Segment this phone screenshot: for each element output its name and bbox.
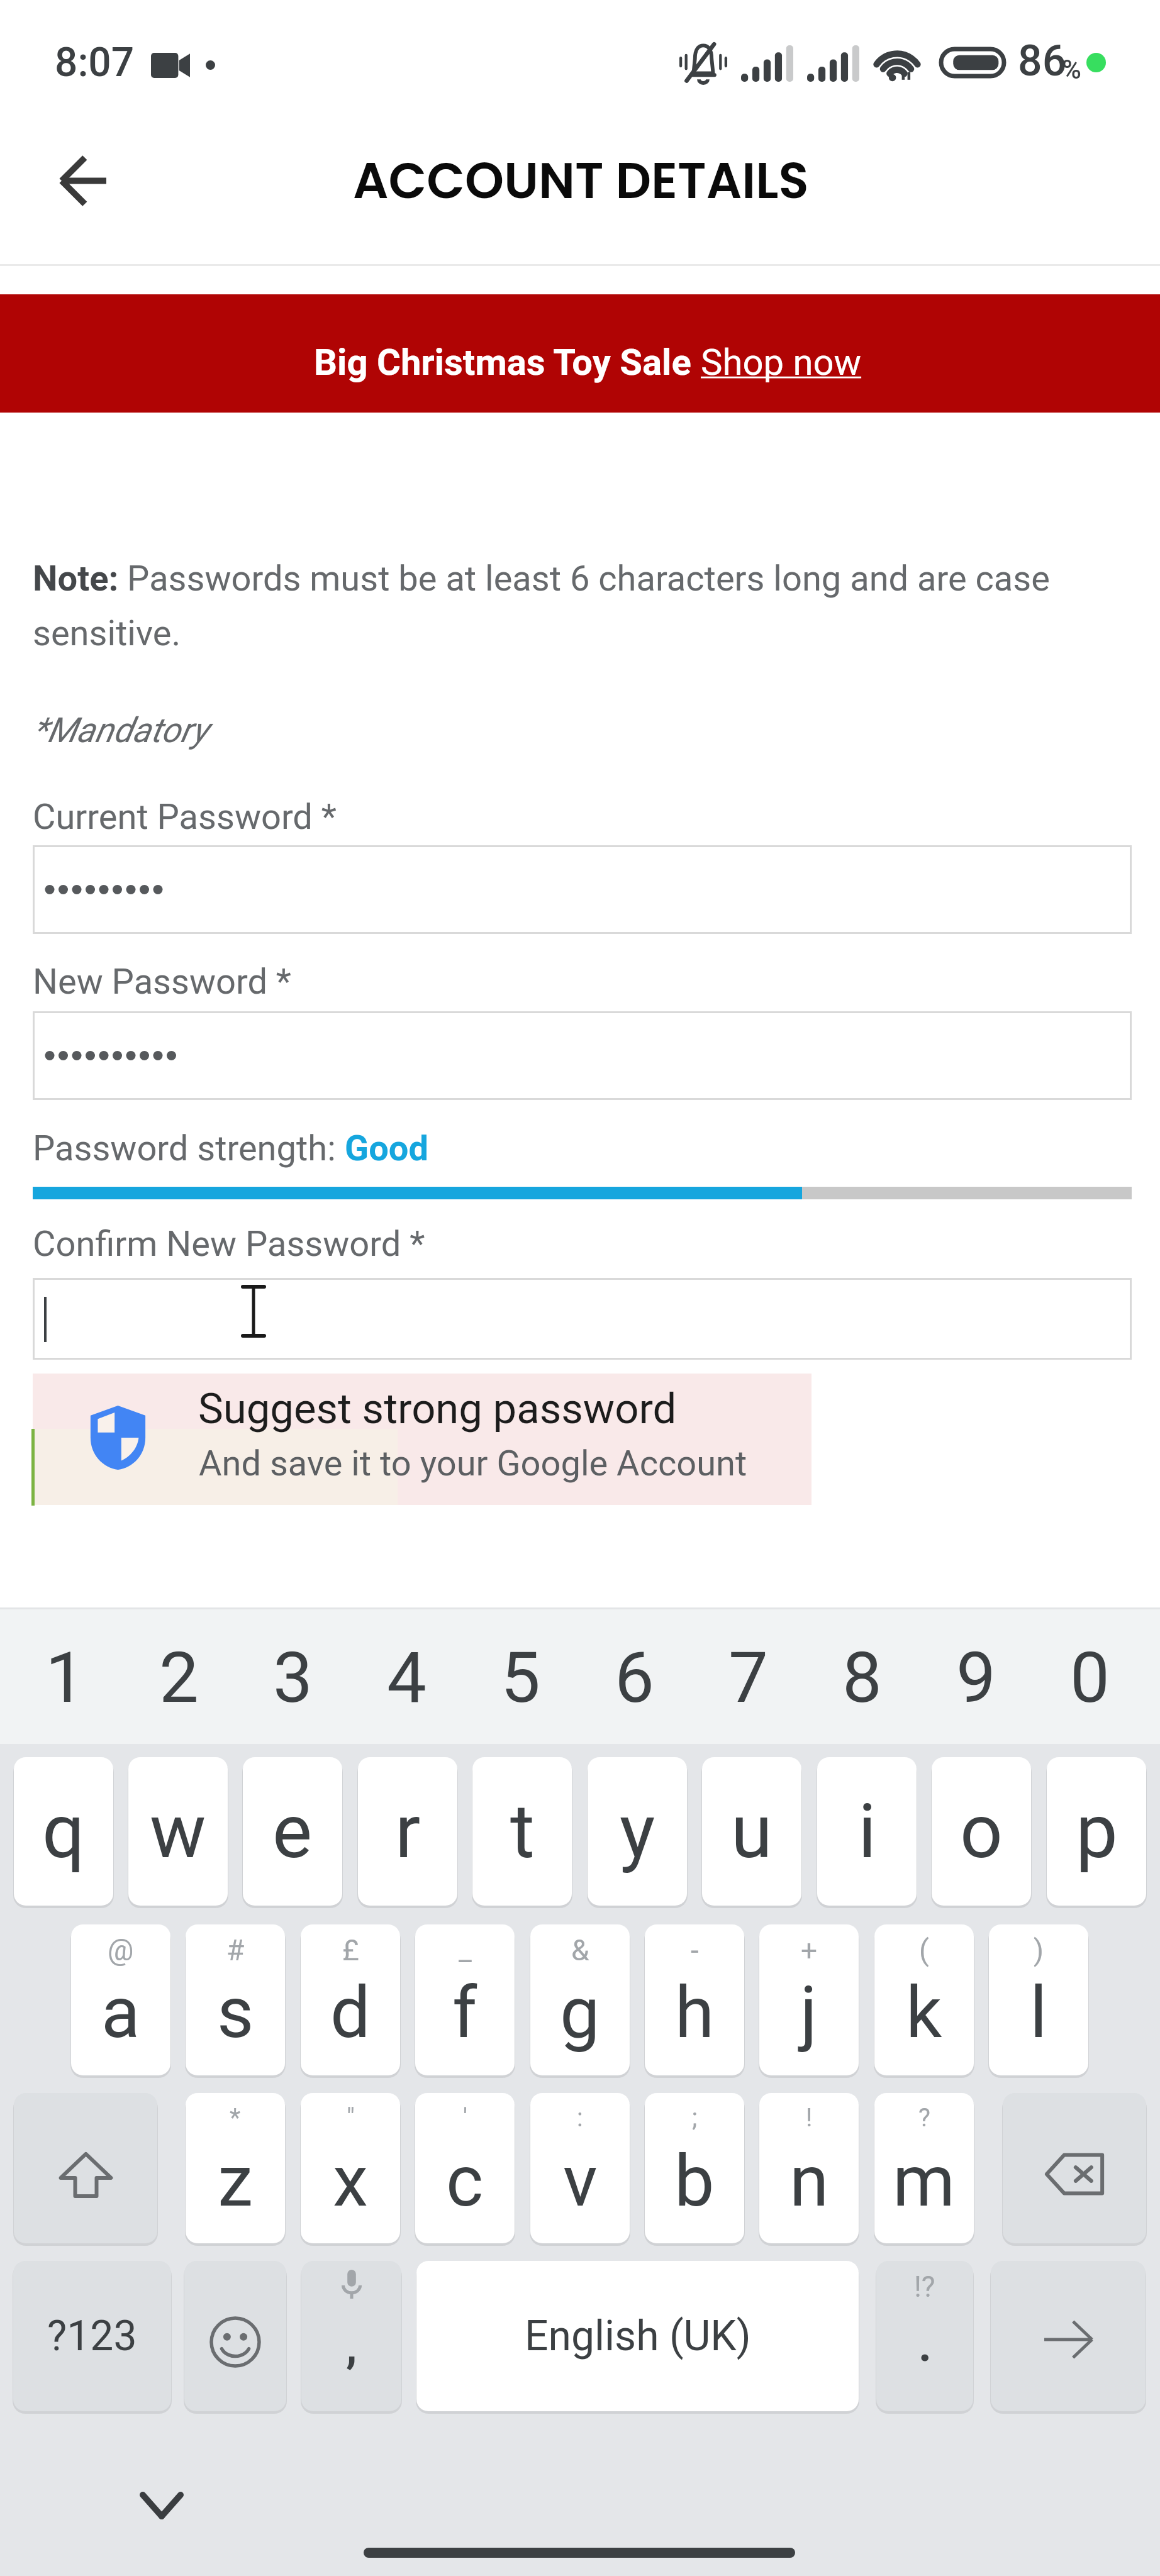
button[interactable]: 2 xyxy=(122,1611,235,1743)
staticText: And save it to your Google Account xyxy=(199,1443,747,1484)
button[interactable]: g xyxy=(530,1924,630,2075)
staticText: _ xyxy=(459,1933,472,1967)
staticText: *Mandatory xyxy=(33,710,208,750)
button[interactable]: d xyxy=(301,1924,400,2075)
staticText: o xyxy=(960,1788,1003,1875)
button[interactable]: x xyxy=(301,2093,400,2243)
staticText: Current Password * xyxy=(33,796,337,838)
button[interactable]: o xyxy=(932,1757,1031,1906)
button[interactable]: Shift xyxy=(14,2093,157,2243)
button[interactable]: m xyxy=(874,2093,974,2243)
button[interactable]: . xyxy=(876,2261,973,2411)
staticText: l xyxy=(1030,1971,1047,2054)
staticText: 86 xyxy=(1018,36,1067,86)
button[interactable]: c xyxy=(415,2093,515,2243)
button[interactable]: s xyxy=(186,1924,285,2075)
button[interactable]: 0 xyxy=(1033,1611,1146,1743)
button[interactable]: k xyxy=(874,1924,974,2075)
staticText: New Password * xyxy=(33,961,291,1002)
staticText: ( xyxy=(919,1933,929,1967)
staticText: v xyxy=(563,2140,598,2223)
button[interactable]: e xyxy=(243,1757,342,1906)
button[interactable]: u xyxy=(702,1757,801,1906)
staticText: ! xyxy=(806,2103,813,2133)
staticText: ?123 xyxy=(47,2312,137,2360)
button[interactable]: 8 xyxy=(805,1611,918,1743)
button[interactable]: y xyxy=(588,1757,687,1906)
button[interactable]: Back xyxy=(35,133,130,228)
staticText: " xyxy=(347,2103,355,2133)
staticText: Good xyxy=(345,1128,429,1169)
button[interactable]: Emoji xyxy=(184,2261,286,2411)
button[interactable]: r xyxy=(358,1757,457,1906)
staticText: ) xyxy=(1034,1933,1044,1967)
staticText: @ xyxy=(108,1933,134,1967)
staticText: 7 xyxy=(728,1636,768,1719)
staticText: 6 xyxy=(615,1636,654,1719)
button[interactable]: h xyxy=(645,1924,744,2075)
staticText: ; xyxy=(692,2103,698,2133)
staticText: 0 xyxy=(1070,1636,1110,1719)
button[interactable] xyxy=(33,1278,1132,1360)
button[interactable]: 1 xyxy=(8,1611,121,1743)
staticText: u xyxy=(731,1788,772,1875)
staticText: 5 xyxy=(501,1636,540,1719)
staticText: k xyxy=(906,1971,942,2054)
button[interactable]: 4 xyxy=(350,1611,463,1743)
button[interactable]: English (UK) xyxy=(416,2261,859,2411)
staticText: z xyxy=(218,2140,254,2223)
staticText: n xyxy=(789,2140,829,2223)
button[interactable]: Backspace xyxy=(1003,2093,1146,2243)
button[interactable]: , xyxy=(301,2261,401,2411)
button[interactable] xyxy=(33,1011,1132,1100)
staticText: Suggest strong password xyxy=(198,1384,677,1434)
button[interactable]: 3 xyxy=(236,1611,349,1743)
button[interactable]: a xyxy=(71,1924,170,2075)
staticText: % xyxy=(1062,54,1081,85)
button[interactable]: Big Christmas Toy Sale xyxy=(0,294,1160,413)
button[interactable]: Next xyxy=(991,2261,1146,2411)
staticText: !? xyxy=(914,2270,935,2304)
button[interactable]: 9 xyxy=(919,1611,1032,1743)
staticText: - xyxy=(691,1933,699,1967)
staticText: + xyxy=(801,1933,818,1967)
staticText: w xyxy=(150,1788,206,1875)
staticText: 9 xyxy=(956,1636,996,1719)
button[interactable]: v xyxy=(530,2093,630,2243)
staticText: 1 xyxy=(45,1636,85,1719)
button[interactable]: i xyxy=(817,1757,917,1906)
button[interactable]: Suggest strong password xyxy=(33,1374,811,1505)
staticText: 2 xyxy=(159,1636,199,1719)
staticText: Shop now xyxy=(701,341,862,384)
button[interactable]: b xyxy=(645,2093,744,2243)
button[interactable]: t xyxy=(472,1757,572,1906)
button[interactable]: z xyxy=(186,2093,285,2243)
staticText: g xyxy=(560,1971,600,2054)
staticText: # xyxy=(226,1933,245,1967)
staticText: Password strength: xyxy=(33,1128,345,1169)
button[interactable]: 7 xyxy=(691,1611,805,1743)
staticText: s xyxy=(217,1971,254,2054)
button[interactable]: Hide keyboard xyxy=(140,2492,184,2519)
staticText: ? xyxy=(918,2103,930,2133)
button[interactable]: ?123 xyxy=(13,2261,171,2411)
button[interactable]: j xyxy=(759,1924,859,2075)
staticText: j xyxy=(800,1971,818,2054)
button[interactable]: 6 xyxy=(577,1611,691,1743)
button[interactable]: n xyxy=(759,2093,859,2243)
button[interactable]: w xyxy=(128,1757,228,1906)
staticText: f xyxy=(452,1971,477,2054)
button[interactable] xyxy=(33,845,1132,934)
button[interactable]: 5 xyxy=(464,1611,577,1743)
staticText: x xyxy=(333,2140,369,2223)
staticText: c xyxy=(446,2140,484,2223)
staticText: Confirm New Password * xyxy=(33,1223,425,1265)
staticText: ACCOUNT DETAILS xyxy=(353,146,809,216)
button[interactable]: l xyxy=(989,1924,1088,2075)
staticText: : xyxy=(577,2103,583,2133)
staticText: h xyxy=(675,1971,715,2054)
button[interactable]: q xyxy=(14,1757,113,1906)
staticText: 4 xyxy=(387,1636,427,1719)
button[interactable]: f xyxy=(415,1924,515,2075)
button[interactable]: p xyxy=(1047,1757,1146,1906)
